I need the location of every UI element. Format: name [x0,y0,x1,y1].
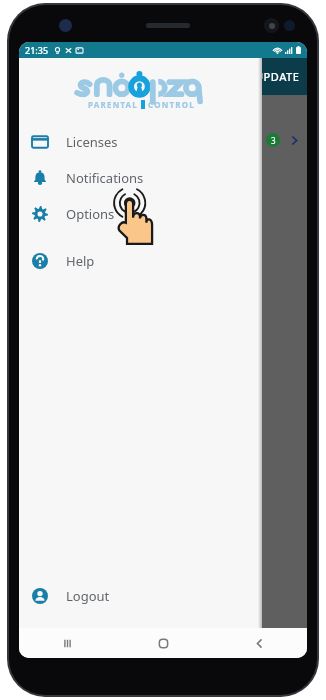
button[interactable]: 3 [19,127,307,153]
staticText: Logout [66,587,110,605]
button[interactable]: Help [19,243,262,279]
staticText: CONTROL [148,99,195,110]
button[interactable]: Home [115,628,211,658]
button[interactable]: Notifications [19,160,262,196]
button[interactable]: Logout [19,578,262,614]
button[interactable]: Back [211,628,307,658]
staticText: PARENTAL [88,99,138,110]
button[interactable]: Licenses [19,124,262,160]
button[interactable]: UPDATE [248,62,307,91]
staticText: Notifications [66,169,144,187]
staticText: Options [66,205,115,223]
staticText: Licenses [66,133,118,151]
staticText: 3 [271,135,276,146]
button[interactable]: Recents [19,628,115,658]
other: Tap here [116,197,154,243]
button[interactable]: Options [19,196,262,232]
staticText: UPDATE [255,69,300,84]
staticText: Help [66,252,95,270]
staticText: 21:35 [25,44,49,56]
